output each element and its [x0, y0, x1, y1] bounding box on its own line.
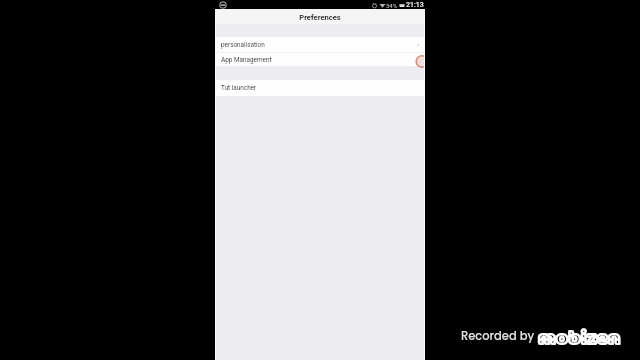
staticText: Tut launcher [221, 84, 257, 92]
other: Battery [398, 2, 406, 9]
staticText: 34% [386, 2, 398, 9]
button[interactable]: personalisation [215, 37, 425, 52]
staticText: personalisation [221, 41, 265, 49]
button[interactable]: App Management [215, 53, 425, 66]
other: Notification [219, 1, 227, 9]
button[interactable]: Tut launcher [215, 80, 425, 96]
staticText: Preferences [299, 13, 341, 22]
other: Touch indicator [415, 55, 425, 68]
other: Network [379, 2, 386, 9]
staticText: mobizen [538, 324, 621, 354]
staticText: Recorded by [461, 328, 535, 344]
staticText: App Management [221, 56, 272, 64]
other: Open [415, 42, 421, 48]
staticText: 21:13 [406, 1, 424, 9]
other: Alarm set [371, 2, 378, 9]
